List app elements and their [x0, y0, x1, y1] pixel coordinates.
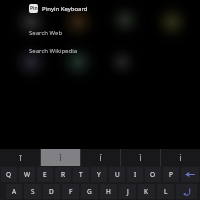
button[interactable]: K — [138, 184, 155, 199]
staticText: R — [61, 170, 66, 179]
staticText: L — [164, 187, 168, 196]
button[interactable]: L — [157, 184, 174, 199]
button[interactable]: i — [161, 149, 200, 166]
staticText: i — [179, 152, 182, 163]
staticText: A — [12, 187, 17, 196]
staticText: I — [134, 170, 137, 179]
button[interactable]: A — [6, 184, 22, 199]
button[interactable]: Enter — [176, 184, 197, 199]
staticText: E — [43, 170, 47, 179]
staticText: P — [169, 170, 173, 179]
staticText: F — [69, 187, 73, 196]
button[interactable]: Search Web — [0, 28, 200, 38]
staticText: W — [24, 170, 31, 179]
button[interactable]: T — [73, 167, 89, 182]
staticText: Q — [6, 170, 12, 179]
button[interactable]: Backspace — [181, 167, 199, 182]
button[interactable]: U — [109, 167, 125, 182]
staticText: J — [127, 187, 129, 196]
button[interactable]: P — [163, 167, 179, 182]
staticText: Pin — [30, 5, 38, 12]
button[interactable]: Pin — [29, 3, 88, 14]
staticText: Y — [97, 170, 101, 179]
staticText: D — [49, 187, 54, 196]
staticText: ì — [139, 152, 142, 163]
button[interactable]: ī — [0, 149, 40, 166]
button[interactable]: S — [24, 184, 41, 199]
button[interactable]: ǐ — [41, 149, 80, 166]
button[interactable]: H — [100, 184, 117, 199]
button[interactable]: Y — [91, 167, 107, 182]
button[interactable]: J — [119, 184, 136, 199]
button[interactable]: F — [62, 184, 79, 199]
staticText: Search Wikipedia — [29, 47, 78, 55]
button[interactable]: ì — [121, 149, 160, 166]
staticText: K — [144, 187, 149, 196]
staticText: Pinyin Keyboard — [42, 5, 88, 13]
staticText: G — [87, 187, 92, 196]
button[interactable]: G — [81, 184, 98, 199]
button[interactable]: I — [127, 167, 143, 182]
button[interactable]: D — [43, 184, 60, 199]
staticText: í — [99, 152, 102, 163]
button[interactable]: R — [55, 167, 71, 182]
button[interactable]: W — [19, 167, 35, 182]
button[interactable]: Q — [1, 167, 17, 182]
staticText: T — [79, 170, 83, 179]
staticText: O — [150, 170, 156, 179]
button[interactable]: Search Wikipedia — [0, 46, 200, 56]
staticText: H — [106, 187, 111, 196]
staticText: Search Web — [29, 29, 63, 37]
staticText: U — [115, 170, 120, 179]
button[interactable]: O — [145, 167, 161, 182]
button[interactable]: E — [37, 167, 53, 182]
staticText: ī — [19, 152, 22, 163]
staticText: S — [31, 187, 35, 196]
button[interactable]: í — [81, 149, 120, 166]
staticText: ǐ — [59, 152, 62, 163]
